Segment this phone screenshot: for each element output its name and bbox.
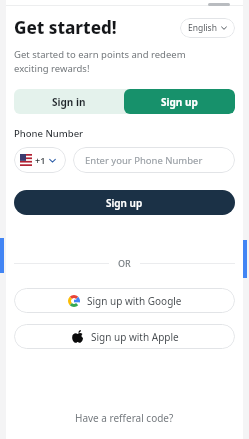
button[interactable]: Sign in	[14, 89, 124, 114]
staticText: Sign up	[106, 196, 143, 210]
button[interactable]: Sign up	[14, 190, 235, 215]
staticText: Sign up with Apple	[91, 330, 179, 344]
button[interactable]: English	[180, 18, 235, 38]
staticText: Sign up with Google	[87, 294, 182, 308]
staticText: Get started to earn points and redeem ex…	[14, 48, 186, 75]
button[interactable]: Have a refferal code?	[14, 411, 235, 425]
staticText: OR	[118, 257, 131, 269]
staticText: Sign up	[161, 95, 198, 109]
staticText: Phone Number	[14, 127, 84, 140]
staticText: Get started!	[14, 16, 117, 39]
staticText: English	[188, 22, 217, 34]
staticText: Enter your Phone Number	[85, 154, 203, 167]
staticText: Have a refferal code?	[75, 411, 174, 425]
button[interactable]: Sign up with Apple	[14, 324, 235, 349]
button[interactable]: Select country code	[14, 147, 66, 173]
button[interactable]: Enter your Phone Number	[73, 147, 235, 173]
button[interactable]: Sign up with Google	[14, 288, 235, 313]
staticText: Sign in	[52, 95, 86, 109]
button[interactable]: Sign up	[124, 89, 235, 114]
staticText: +1	[35, 154, 46, 166]
